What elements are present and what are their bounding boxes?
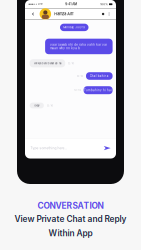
staticText: 12:14 bbox=[74, 89, 81, 92]
staticText: 12:12 bbox=[77, 74, 84, 78]
button[interactable]: Send message bbox=[104, 146, 111, 150]
staticText: Type something here... bbox=[30, 146, 67, 150]
staticText: 9:41 AM bbox=[65, 2, 77, 6]
staticText: 12:10 bbox=[68, 62, 75, 65]
staticText: Hamza Arif bbox=[54, 12, 73, 16]
staticText: 100% bbox=[100, 3, 108, 6]
staticText: View Private Chat and Reply bbox=[14, 214, 126, 224]
staticText: We kya bare bahar ab na bbox=[34, 62, 61, 65]
staticText: LTE bbox=[38, 3, 42, 6]
staticText: Chal bahir a bbox=[90, 74, 109, 78]
button[interactable]: More options bbox=[107, 8, 112, 20]
staticText: Monday, July 13 bbox=[63, 26, 85, 29]
button[interactable]: Call bbox=[100, 8, 107, 20]
button[interactable]: Back bbox=[29, 8, 36, 20]
staticText: Within App bbox=[48, 228, 92, 238]
staticText: CONVERSATION bbox=[37, 200, 103, 211]
staticText: Okay bbox=[34, 104, 39, 107]
staticText: 12:16 bbox=[46, 104, 53, 107]
staticText: Tum bahiny hi hai bbox=[84, 88, 112, 92]
staticText: yaar jawab nhi de raha yahh kar yar maan… bbox=[50, 43, 107, 50]
